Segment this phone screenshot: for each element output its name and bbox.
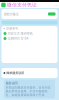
staticText: 服务说明 — [6, 81, 18, 85]
staticText: 交易时间 12:04 — [7, 36, 28, 40]
staticText: ··· — [54, 3, 57, 7]
staticText: 账单服务说明 — [6, 71, 24, 75]
staticText: 交易单号 — [6, 26, 18, 30]
staticText: 收款方备注 — [3, 12, 18, 16]
staticText: 付款方式 微信零钱 — [7, 31, 32, 35]
staticText: 微信支付凭证 — [7, 2, 37, 8]
staticText: 本凭证由微信支付提供，仅作为交易记录凭证使用，不作为报销凭证。如需发票请联系商户… — [6, 86, 51, 97]
